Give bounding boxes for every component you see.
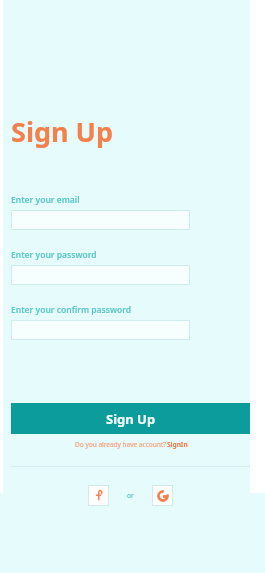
button[interactable]: Sign up with Google <box>152 485 173 506</box>
button[interactable]: Sign up with Facebook <box>88 485 109 506</box>
button[interactable] <box>11 210 190 230</box>
staticText: SignIn <box>167 440 188 449</box>
button[interactable]: SignIn <box>167 440 188 449</box>
staticText: Sign Up <box>106 410 156 428</box>
button[interactable] <box>11 320 190 340</box>
staticText: Enter your email <box>11 194 80 206</box>
staticText: Enter your confirm password <box>11 304 132 316</box>
staticText: Do you already have account? <box>74 440 167 449</box>
button[interactable]: Sign Up <box>11 403 250 434</box>
button[interactable] <box>11 265 190 285</box>
staticText: Enter your password <box>11 249 97 261</box>
staticText: Sign Up <box>11 113 114 150</box>
staticText: or <box>127 491 134 500</box>
